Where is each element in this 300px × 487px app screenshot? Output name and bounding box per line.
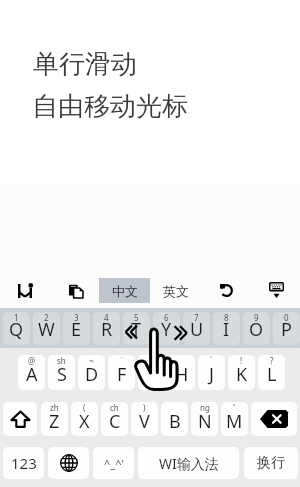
button[interactable]: ( [71, 402, 98, 436]
staticText: 4 [104, 312, 109, 323]
staticText: ! [240, 355, 243, 366]
staticText: M [226, 409, 243, 434]
button[interactable]: ch [101, 402, 128, 436]
staticText: WI输入法 [159, 454, 219, 473]
staticText: 换行 [257, 454, 285, 472]
button[interactable]: ng [191, 402, 218, 436]
button[interactable]: 3 [63, 312, 90, 345]
button[interactable]: 123 [3, 447, 44, 479]
button[interactable]: 1 [3, 312, 30, 345]
button[interactable]: 换行 [244, 447, 298, 479]
staticText: L [267, 362, 277, 387]
staticText: ( [83, 402, 86, 413]
staticText: sh [57, 355, 66, 366]
staticText: zh [50, 402, 59, 413]
button[interactable] [3, 402, 37, 436]
staticText: U [190, 317, 204, 342]
staticText: R [101, 317, 113, 342]
staticText: ng [200, 402, 210, 413]
staticText: O [249, 317, 264, 342]
button[interactable] [48, 447, 89, 479]
button[interactable]: 8 [213, 312, 240, 345]
staticText: I [223, 317, 230, 342]
staticText: ch [110, 402, 119, 413]
staticText: 2 [44, 312, 49, 323]
staticText: A [26, 362, 38, 387]
staticText: 1 [14, 312, 19, 323]
staticText: 中文 [112, 283, 138, 299]
button[interactable]: Hide keyboard [260, 276, 292, 304]
staticText: 8 [224, 312, 229, 323]
button[interactable]: 9 [243, 312, 270, 345]
staticText: Q [9, 317, 24, 342]
button[interactable]: 5 [123, 312, 150, 345]
staticText: ~ [89, 355, 94, 366]
staticText: N [198, 409, 212, 434]
staticText: B [169, 409, 181, 434]
button[interactable]: ^_^' [93, 447, 134, 479]
staticText: ˙ [121, 355, 123, 366]
staticText: T [131, 317, 142, 342]
staticText: P [281, 317, 292, 342]
button[interactable]: @ [18, 355, 45, 390]
staticText: 5 [134, 312, 139, 323]
staticText: C [109, 409, 121, 434]
button[interactable]: 4 [93, 312, 120, 345]
button[interactable]: ) [131, 402, 158, 436]
staticText: 6 [164, 312, 169, 323]
button[interactable]: ! [228, 355, 255, 390]
button[interactable]: ˋ [198, 355, 225, 390]
button[interactable]: 0 [273, 312, 300, 345]
staticText: ^_^' [104, 456, 124, 471]
staticText: 7 [194, 312, 199, 323]
button[interactable]: ˚ [221, 402, 248, 436]
staticText: 123 [11, 453, 37, 473]
staticText: ˋ [210, 355, 213, 366]
staticText: K [236, 362, 248, 387]
staticText: ? [270, 355, 274, 366]
staticText: Y [161, 317, 172, 342]
staticText: V [139, 409, 150, 434]
staticText: Z [49, 409, 60, 434]
staticText: G [145, 362, 159, 387]
button[interactable]: B [161, 402, 188, 436]
button[interactable]: 英文 [152, 278, 200, 303]
staticText: ) [143, 402, 146, 413]
staticText: J [209, 362, 214, 387]
staticText: 0 [284, 312, 289, 323]
staticText: D [85, 362, 99, 387]
button[interactable]: 2 [33, 312, 60, 345]
staticText: 3 [74, 312, 79, 323]
staticText: S [57, 362, 67, 387]
staticText: 英文 [163, 283, 189, 299]
staticText: ˚ [233, 402, 236, 413]
staticText: 9 [254, 312, 259, 323]
button[interactable]: ~ [78, 355, 105, 390]
button[interactable]: 6 [153, 312, 180, 345]
button[interactable]: Clipboard [60, 278, 92, 303]
staticText: E [71, 317, 82, 342]
button[interactable]: ? [258, 355, 285, 390]
button[interactable]: 中文 [99, 278, 150, 303]
button[interactable]: 7 [183, 312, 210, 345]
staticText: @ [28, 355, 36, 366]
button[interactable] [251, 402, 297, 436]
button[interactable]: WI输入法 [138, 447, 239, 479]
staticText: 单行滑动 [33, 48, 137, 81]
button[interactable]: ˙ [108, 355, 135, 390]
button[interactable]: WI input [8, 278, 42, 303]
button[interactable]: G [138, 355, 165, 390]
button[interactable]: sh [48, 355, 75, 390]
button[interactable]: zh [41, 402, 68, 436]
staticText: X [79, 409, 90, 434]
staticText: W [38, 317, 55, 342]
staticText: H [175, 362, 189, 387]
staticText: F [117, 362, 127, 387]
button[interactable]: H [168, 355, 195, 390]
staticText: 自由移动光标 [32, 90, 188, 123]
button[interactable]: Undo [210, 278, 242, 303]
